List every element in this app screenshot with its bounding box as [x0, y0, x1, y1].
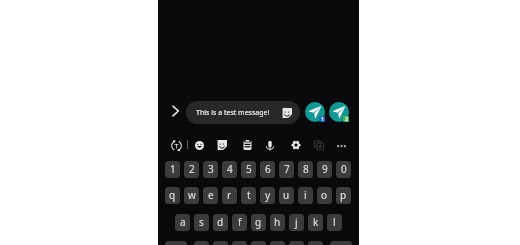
staticText: 9 [322, 162, 328, 176]
staticText: This is a test message! [196, 108, 270, 118]
button[interactable]: l [327, 214, 342, 231]
staticText: 5 [246, 162, 252, 176]
staticText: q [169, 188, 176, 202]
button[interactable]: o [317, 187, 332, 204]
staticText: e [208, 188, 214, 202]
staticText: 4 [227, 162, 233, 176]
staticText: 1 [321, 116, 324, 122]
button[interactable]: 1 [165, 161, 180, 178]
button[interactable]: j [289, 214, 304, 231]
staticText: 3 [208, 162, 214, 176]
button[interactable]: y [260, 187, 275, 204]
button[interactable]: m [308, 241, 323, 245]
button[interactable]: c [232, 241, 247, 245]
staticText: w [188, 188, 196, 202]
button[interactable]: 6 [260, 161, 275, 178]
staticText: 7 [284, 162, 290, 176]
button[interactable]: Stickers [215, 138, 229, 152]
button[interactable]: k [308, 214, 323, 231]
button[interactable]: s [194, 214, 209, 231]
button[interactable]: Clipboard [240, 138, 254, 152]
staticText: l [333, 215, 336, 229]
button[interactable]: e [203, 187, 218, 204]
button[interactable]: Expand actions [168, 103, 184, 119]
button[interactable]: h [270, 214, 285, 231]
staticText: f [238, 215, 242, 229]
button[interactable]: Send with SIM 1 [305, 102, 325, 122]
button[interactable]: Stickers [281, 107, 293, 119]
button[interactable]: i [298, 187, 313, 204]
staticText: 2 [345, 116, 348, 122]
staticText: 2 [189, 162, 195, 176]
button[interactable]: n [289, 241, 304, 245]
button[interactable]: 3 [203, 161, 218, 178]
button[interactable]: q [165, 187, 180, 204]
staticText: k [313, 215, 319, 229]
staticText: d [217, 215, 224, 229]
button[interactable]: u [279, 187, 294, 204]
button[interactable]: Emoji [192, 138, 206, 152]
button[interactable]: 2 [184, 161, 199, 178]
staticText: p [340, 188, 347, 202]
staticText: a [180, 215, 186, 229]
button[interactable]: p [336, 187, 351, 204]
button[interactable]: 5 [241, 161, 256, 178]
button[interactable]: f [232, 214, 247, 231]
button[interactable]: 7 [279, 161, 294, 178]
button[interactable]: Text rotate [169, 138, 183, 152]
staticText: 1 [170, 162, 176, 176]
staticText: o [321, 188, 328, 202]
staticText: g [255, 215, 262, 229]
button[interactable]: Settings [289, 138, 303, 152]
staticText: s [199, 215, 204, 229]
staticText: i [304, 188, 307, 202]
button[interactable]: 9 [317, 161, 332, 178]
button[interactable]: Backspace [330, 241, 352, 245]
button[interactable]: b [270, 241, 285, 245]
button[interactable]: Voice input [263, 138, 277, 152]
button[interactable]: 0 [336, 161, 351, 178]
button[interactable]: x [213, 241, 228, 245]
button[interactable]: w [184, 187, 199, 204]
staticText: y [265, 188, 271, 202]
button[interactable]: v [251, 241, 266, 245]
staticText: r [227, 188, 232, 202]
button[interactable]: More options [334, 138, 348, 152]
button[interactable]: This is a test message! [186, 101, 300, 124]
button[interactable]: r [222, 187, 237, 204]
staticText: h [274, 215, 281, 229]
button[interactable]: d [213, 214, 228, 231]
button[interactable]: Send with SIM 2 [329, 102, 349, 122]
staticText: 8 [303, 162, 309, 176]
staticText: u [283, 188, 290, 202]
button[interactable]: z [194, 241, 209, 245]
button[interactable]: t [241, 187, 256, 204]
staticText: 6 [265, 162, 271, 176]
button[interactable]: g [251, 214, 266, 231]
button[interactable]: 4 [222, 161, 237, 178]
staticText: 0 [341, 162, 347, 176]
button[interactable]: 8 [298, 161, 313, 178]
button[interactable]: a [175, 214, 190, 231]
button[interactable]: Translate [312, 138, 326, 152]
staticText: j [295, 215, 298, 229]
button[interactable]: Shift [165, 241, 187, 245]
staticText: t [247, 188, 251, 202]
